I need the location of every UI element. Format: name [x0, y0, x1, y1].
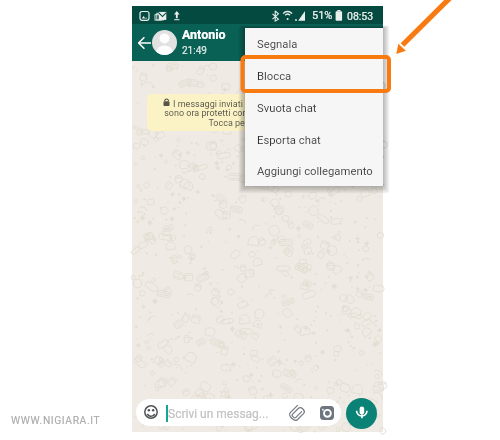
staticText: 21:49	[182, 45, 207, 57]
button[interactable]: Esporta chat	[245, 124, 383, 156]
button[interactable]: Emoji	[144, 405, 158, 419]
button[interactable]: Segnala	[245, 28, 383, 60]
staticText: Antonio	[182, 27, 226, 42]
button[interactable]: Blocca	[245, 60, 383, 92]
staticText: Svuota chat	[257, 102, 317, 115]
button[interactable]: Back	[132, 24, 383, 61]
staticText: Blocca	[257, 70, 292, 83]
staticText: I messaggi inviati a questa chat e le ch…	[173, 99, 355, 110]
staticText: Esporta chat	[257, 134, 321, 147]
button[interactable]: Record voice message	[346, 398, 377, 429]
staticText: Scrivi un messag...	[168, 407, 269, 421]
button[interactable]: Camera	[320, 406, 334, 420]
staticText: Segnala	[257, 38, 298, 51]
staticText: 51%	[312, 9, 333, 22]
button[interactable]: Attach	[288, 405, 305, 422]
button[interactable]: Svuota chat	[245, 92, 383, 124]
staticText: sono ora protetti con la crittografia en…	[164, 108, 350, 119]
staticText: Tocca per saperne di più.	[208, 118, 309, 129]
button[interactable]: Back	[134, 33, 153, 53]
staticText: WWW.NIGIARA.IT	[11, 414, 101, 426]
staticText: Aggiungi collegamento	[257, 165, 373, 178]
staticText: 08:53	[347, 10, 374, 22]
button[interactable]: Aggiungi collegamento	[245, 156, 383, 186]
button[interactable]	[136, 399, 341, 426]
